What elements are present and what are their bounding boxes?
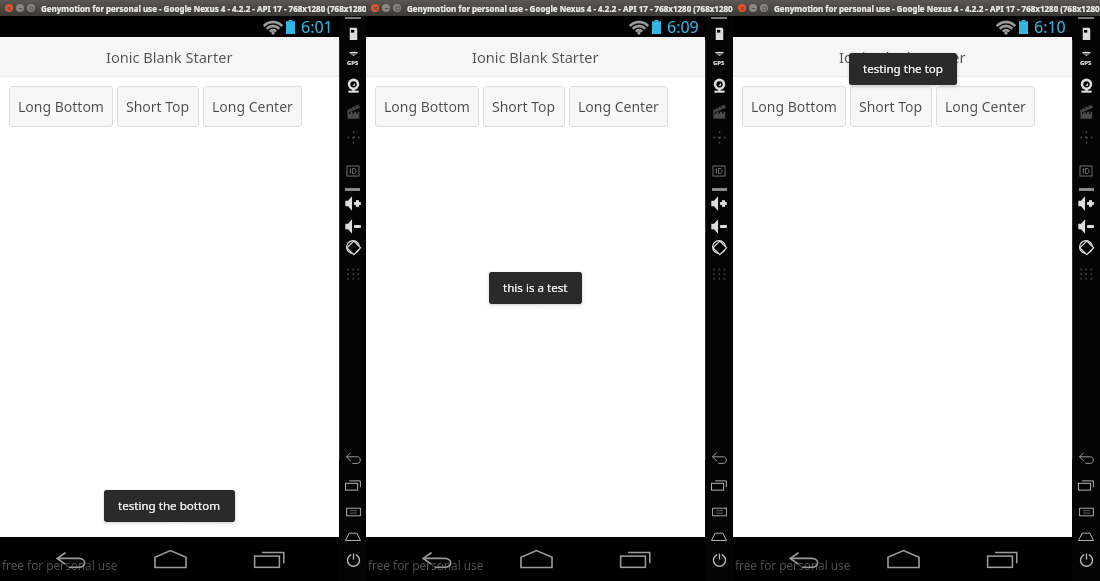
button[interactable]: Home: [515, 545, 557, 573]
staticText: 6:01: [301, 16, 333, 37]
button[interactable]: Navigation: [1076, 127, 1096, 147]
button[interactable]: Long Center: [569, 86, 668, 127]
staticText: testing the top: [863, 61, 943, 77]
button[interactable]: Keyboard: [1076, 264, 1096, 284]
button[interactable]: Power: [1076, 549, 1096, 569]
button[interactable]: Home: [709, 526, 729, 546]
button[interactable]: Home: [882, 545, 924, 573]
button[interactable]: Power: [709, 549, 729, 569]
button[interactable]: Maximize window: [760, 4, 768, 12]
button[interactable]: Long Bottom: [742, 86, 846, 127]
button[interactable]: Long Center: [203, 86, 302, 127]
button[interactable]: Recent apps: [614, 545, 656, 573]
staticText: free for personal use: [368, 557, 484, 573]
button[interactable]: Battery: [709, 23, 729, 43]
button[interactable]: Recent apps: [981, 545, 1023, 573]
button[interactable]: Menu: [1076, 502, 1096, 522]
button[interactable]: Minimize window: [382, 4, 390, 12]
button[interactable]: GPS: [343, 49, 363, 69]
staticText: GPS: [1080, 59, 1092, 67]
staticText: Long Bottom: [751, 97, 837, 116]
staticText: GPS: [347, 59, 359, 67]
button[interactable]: Identifiers: [709, 161, 729, 181]
button[interactable]: Maximize window: [27, 4, 35, 12]
button[interactable]: Maximize window: [393, 4, 401, 12]
staticText: Short Top: [492, 97, 556, 116]
button[interactable]: Long Bottom: [375, 86, 479, 127]
staticText: Short Top: [126, 97, 190, 116]
staticText: Ionic Blank Starter: [839, 47, 966, 67]
button[interactable]: Volume down: [1076, 216, 1096, 236]
button[interactable]: Volume down: [343, 216, 363, 236]
button[interactable]: Battery: [1076, 23, 1096, 43]
staticText: Long Center: [945, 97, 1026, 116]
button[interactable]: Recents: [709, 475, 729, 495]
staticText: GPS: [713, 59, 725, 67]
button[interactable]: Short Top: [850, 86, 932, 127]
button[interactable]: Menu: [343, 502, 363, 522]
button[interactable]: Home: [343, 526, 363, 546]
button[interactable]: Recent apps: [248, 545, 290, 573]
button[interactable]: Rotate screen: [343, 237, 363, 257]
staticText: this is a test: [503, 280, 568, 296]
staticText: 6:10: [1034, 16, 1066, 37]
button[interactable]: Short Top: [483, 86, 565, 127]
staticText: Short Top: [859, 97, 923, 116]
button[interactable]: Camera: [1076, 75, 1096, 95]
button[interactable]: Power: [343, 549, 363, 569]
button[interactable]: Close window: [5, 4, 13, 12]
button[interactable]: GPS: [709, 49, 729, 69]
button[interactable]: Volume up: [709, 193, 729, 213]
staticText: Long Center: [212, 97, 293, 116]
button[interactable]: Long Bottom: [9, 86, 113, 127]
button[interactable]: Close window: [371, 4, 379, 12]
button[interactable]: Media: [1076, 101, 1096, 121]
staticText: Genymotion for personal use - Google Nex…: [41, 3, 370, 14]
staticText: Genymotion for personal use - Google Nex…: [774, 3, 1100, 14]
staticText: testing the bottom: [118, 498, 221, 514]
staticText: Long Bottom: [384, 97, 470, 116]
button[interactable]: Back: [783, 545, 825, 574]
button[interactable]: Volume up: [343, 193, 363, 213]
button[interactable]: Minimize window: [749, 4, 757, 12]
staticText: 6:09: [667, 16, 699, 37]
button[interactable]: Camera: [343, 75, 363, 95]
button[interactable]: Navigation: [343, 127, 363, 147]
staticText: Long Center: [578, 97, 659, 116]
button[interactable]: Volume up: [1076, 193, 1096, 213]
button[interactable]: Navigation: [709, 127, 729, 147]
button[interactable]: Identifiers: [1076, 161, 1096, 181]
button[interactable]: Menu: [709, 502, 729, 522]
button[interactable]: Back: [709, 448, 729, 468]
button[interactable]: Camera: [709, 75, 729, 95]
staticText: Long Bottom: [18, 97, 104, 116]
staticText: Genymotion for personal use - Google Nex…: [407, 3, 736, 14]
button[interactable]: Short Top: [117, 86, 199, 127]
button[interactable]: Back: [50, 545, 92, 574]
button[interactable]: Home: [149, 545, 191, 573]
button[interactable]: Volume down: [709, 216, 729, 236]
button[interactable]: Rotate screen: [1076, 237, 1096, 257]
button[interactable]: Minimize window: [16, 4, 24, 12]
button[interactable]: Rotate screen: [709, 237, 729, 257]
staticText: free for personal use: [735, 557, 851, 573]
button[interactable]: Home: [1076, 526, 1096, 546]
button[interactable]: Back: [343, 448, 363, 468]
staticText: Ionic Blank Starter: [472, 47, 599, 67]
button[interactable]: Recents: [343, 475, 363, 495]
button[interactable]: Media: [709, 101, 729, 121]
button[interactable]: Keyboard: [343, 264, 363, 284]
button[interactable]: Identifiers: [343, 161, 363, 181]
button[interactable]: Long Center: [936, 86, 1035, 127]
button[interactable]: Battery: [343, 23, 363, 43]
button[interactable]: Keyboard: [709, 264, 729, 284]
button[interactable]: Media: [343, 101, 363, 121]
staticText: Ionic Blank Starter: [106, 47, 233, 67]
button[interactable]: Back: [416, 545, 458, 574]
button[interactable]: GPS: [1076, 49, 1096, 69]
button[interactable]: Recents: [1076, 475, 1096, 495]
staticText: free for personal use: [2, 557, 118, 573]
button[interactable]: Close window: [738, 4, 746, 12]
button[interactable]: Back: [1076, 448, 1096, 468]
